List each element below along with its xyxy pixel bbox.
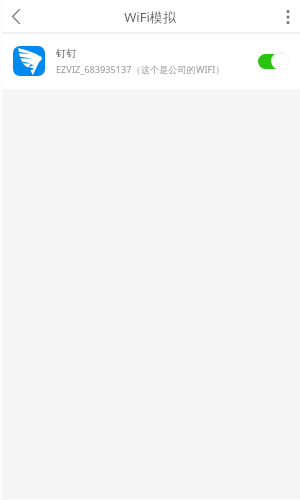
button[interactable]: 钉钉 [0,34,300,89]
staticText: EZVIZ_683935137（这个是公司的WIFI） [56,63,225,76]
staticText: 钉钉 [56,47,77,60]
staticText: WiFi模拟 [124,8,176,26]
button[interactable]: Toggle WiFi simulation [258,52,289,70]
button[interactable]: More options [279,8,296,25]
button[interactable]: Back [0,0,32,32]
